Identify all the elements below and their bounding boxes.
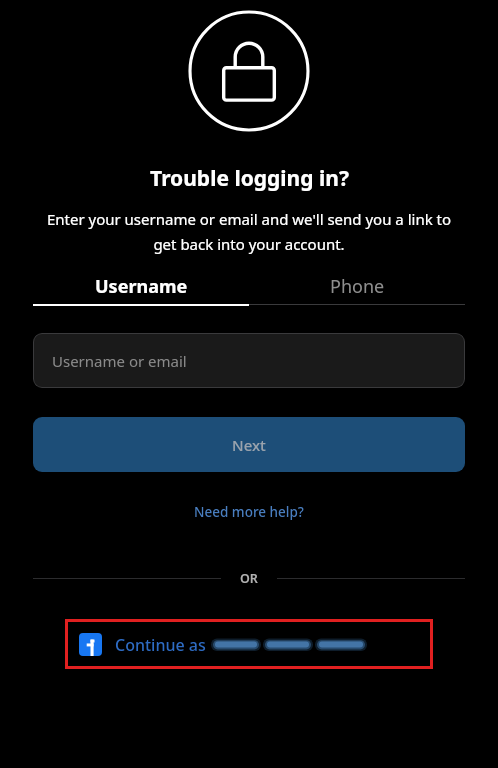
button[interactable]: Username	[33, 268, 249, 306]
staticText: Enter your username or email and we'll s…	[42, 209, 456, 254]
staticText: Need more help?	[194, 503, 304, 521]
button[interactable]: Phone	[249, 268, 465, 305]
staticText: Username or email	[52, 351, 187, 371]
staticText: OR	[240, 570, 258, 587]
button[interactable]: Next	[33, 417, 465, 472]
button[interactable]: Continue as	[65, 619, 433, 669]
staticText: Username	[95, 274, 188, 299]
staticText: Trouble logging in?	[150, 164, 349, 193]
button[interactable]: Need more help?	[184, 499, 314, 525]
staticText: Continue as	[115, 634, 206, 656]
staticText: Phone	[330, 274, 385, 299]
button[interactable]: Username or email	[33, 333, 465, 388]
staticText: Next	[232, 435, 266, 455]
